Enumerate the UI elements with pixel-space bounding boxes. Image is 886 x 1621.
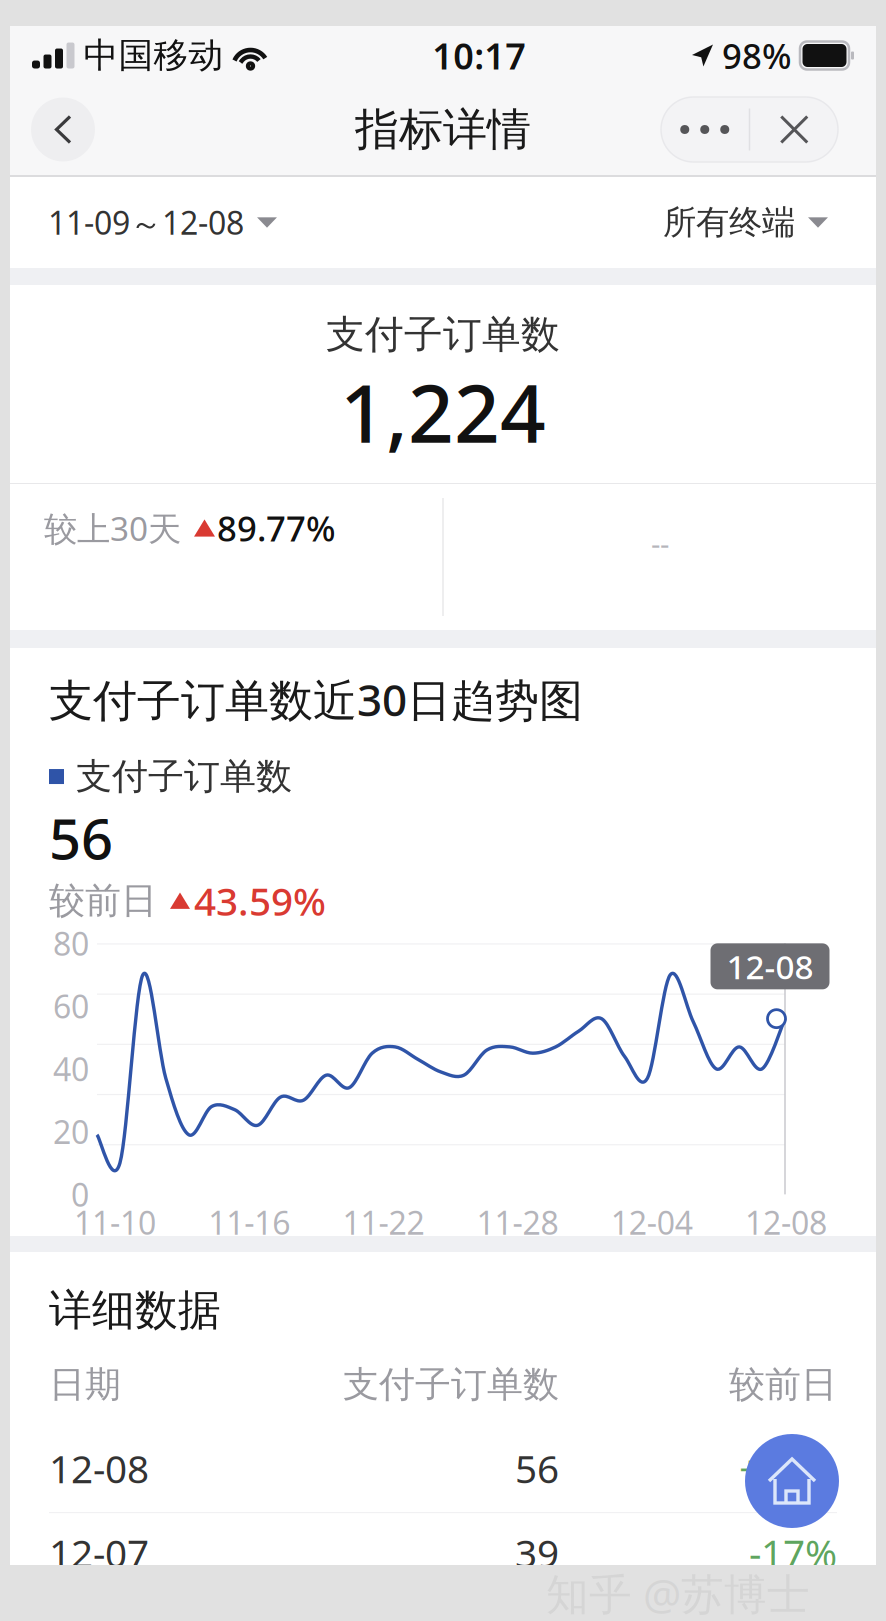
staticText: 98% xyxy=(722,32,792,78)
staticText: 11-28 xyxy=(477,1201,559,1244)
button[interactable]: Home xyxy=(745,1434,839,1528)
staticText: 56 xyxy=(49,801,113,875)
staticText: 支付子订单数 xyxy=(326,311,560,358)
staticText: 支付子订单数 xyxy=(343,1362,559,1407)
staticText: 指标详情 xyxy=(355,102,531,156)
staticText: 89.77% xyxy=(217,505,336,551)
staticText: 43.59% xyxy=(194,875,326,926)
staticText: 56 xyxy=(515,1443,559,1494)
staticText: 日期 xyxy=(49,1362,121,1407)
staticText: 60 xyxy=(53,985,89,1027)
button[interactable]: Back xyxy=(31,97,95,161)
staticText: 1,224 xyxy=(340,358,546,465)
staticText: 较前日 xyxy=(729,1362,837,1407)
staticText: +44% xyxy=(739,1443,837,1494)
staticText: 11-10 xyxy=(74,1201,156,1244)
staticText: 0 xyxy=(71,1173,89,1216)
staticText: 中国移动 xyxy=(83,34,223,77)
staticText: 80 xyxy=(53,922,89,965)
button[interactable]: 11-09～12-08 xyxy=(48,177,277,268)
staticText: 11-16 xyxy=(208,1201,290,1244)
staticText: 较前日 xyxy=(49,879,157,923)
staticText: 知乎 @苏博士 xyxy=(546,1565,810,1621)
staticText: 支付子订单数近30日趋势图 xyxy=(49,670,583,728)
staticText: 12-08 xyxy=(745,1201,827,1244)
staticText: -17% xyxy=(749,1527,837,1578)
staticText: 40 xyxy=(53,1048,89,1090)
staticText: 12-07 xyxy=(49,1527,149,1578)
staticText: 支付子订单数 xyxy=(76,754,292,799)
staticText: 39 xyxy=(515,1527,559,1578)
button[interactable]: 所有终端 xyxy=(663,177,828,268)
staticText: 较上30天 xyxy=(44,506,181,550)
button[interactable]: More and close xyxy=(661,97,838,162)
staticText: -- xyxy=(651,524,669,563)
staticText: 12-08 xyxy=(726,944,813,988)
staticText: 12-08 xyxy=(49,1443,149,1494)
staticText: 12-04 xyxy=(611,1201,693,1244)
staticText: 11-22 xyxy=(342,1201,424,1244)
staticText: 所有终端 xyxy=(663,202,795,243)
staticText: 详细数据 xyxy=(49,1284,221,1336)
staticText: 10:17 xyxy=(432,32,526,79)
staticText: 11-09～12-08 xyxy=(48,201,244,244)
staticText: 20 xyxy=(53,1110,89,1153)
